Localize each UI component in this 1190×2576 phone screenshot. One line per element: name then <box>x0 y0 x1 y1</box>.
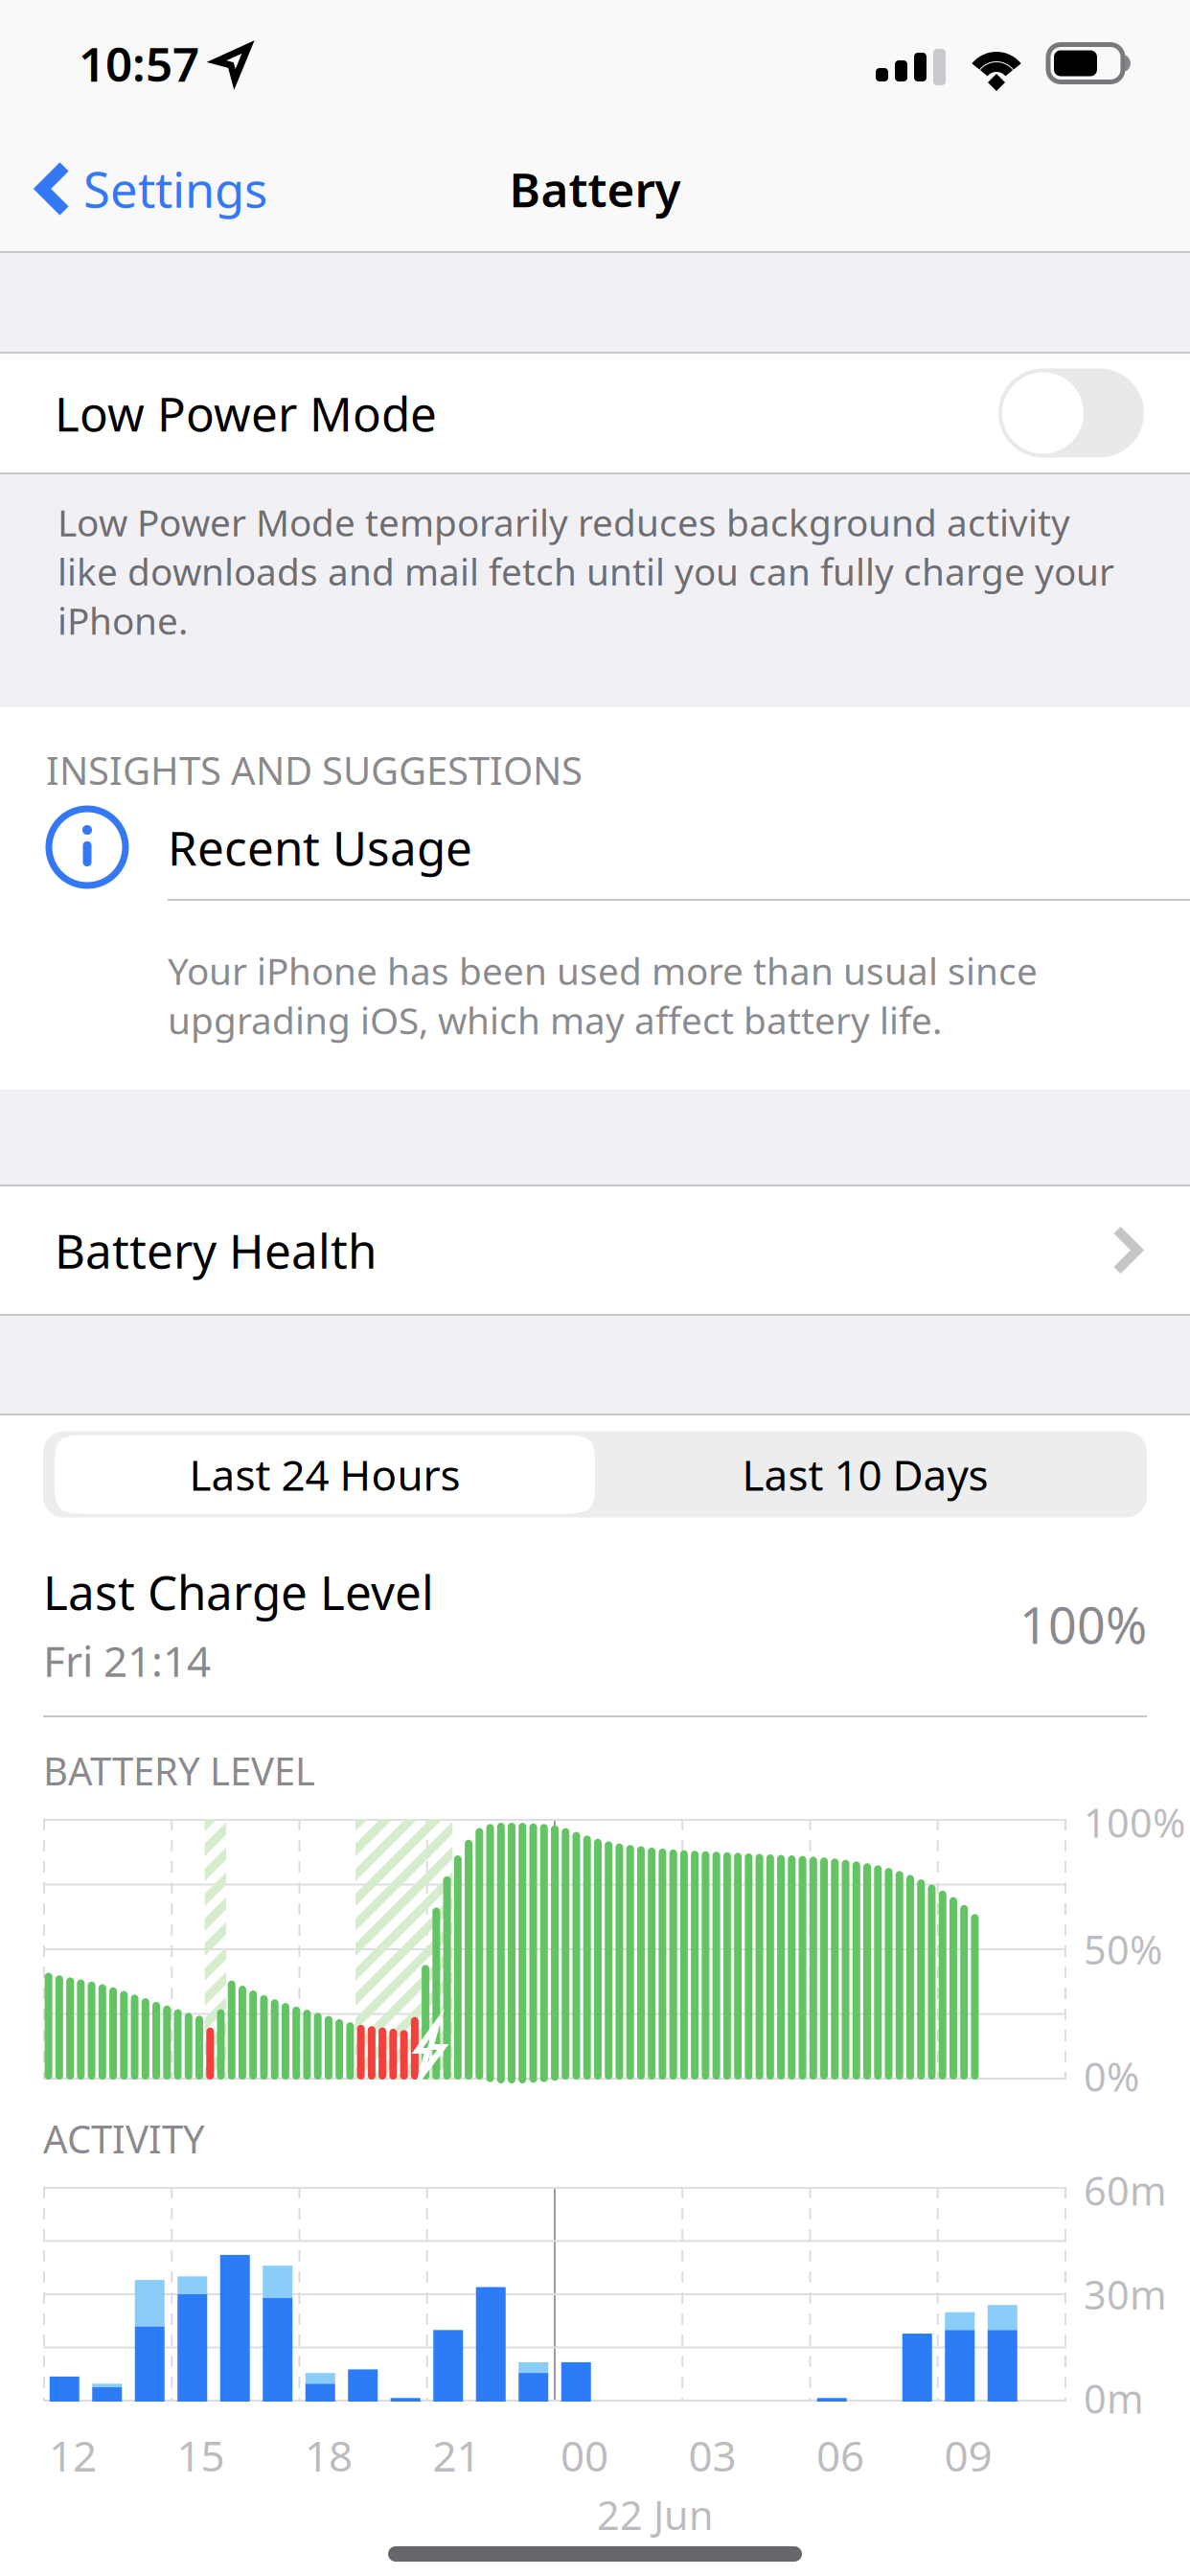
staticText: Fri 21:14 <box>43 1633 211 1688</box>
staticText: Your iPhone has been used more than usua… <box>168 946 1038 1044</box>
staticText: 60m <box>1084 2164 1167 2217</box>
staticText: 03 <box>688 2427 736 2483</box>
staticText: Battery Health <box>55 1219 377 1281</box>
staticText: 0% <box>1084 2050 1139 2103</box>
staticText: 06 <box>816 2427 864 2483</box>
staticText: 30m <box>1084 2268 1167 2321</box>
staticText: 100% <box>1019 1591 1147 1658</box>
staticText: 21 <box>433 2427 481 2483</box>
staticText: Low Power Mode temporarily reduces backg… <box>57 497 1114 645</box>
staticText: Low Power Mode <box>55 382 437 444</box>
staticText: Settings <box>83 157 267 221</box>
staticText: 0m <box>1084 2372 1144 2425</box>
staticText: 00 <box>561 2427 608 2483</box>
staticText: Last Charge Level <box>43 1560 434 1623</box>
staticText: 10:57 <box>79 32 199 95</box>
staticText: Last 24 Hours <box>189 1446 460 1502</box>
staticText: 15 <box>177 2427 225 2483</box>
staticText: Battery <box>509 157 681 220</box>
button[interactable]: Battery Health <box>0 1186 1190 1314</box>
staticText: 18 <box>305 2427 353 2483</box>
button[interactable]: Low Power Mode <box>0 354 1190 472</box>
staticText: Last 10 Days <box>742 1446 988 1502</box>
staticText: 09 <box>944 2427 992 2483</box>
staticText: 100% <box>1084 1796 1185 1849</box>
staticText: INSIGHTS AND SUGGESTIONS <box>46 745 583 795</box>
button[interactable]: Last 10 Days <box>595 1435 1135 1514</box>
staticText: BATTERY LEVEL <box>43 1745 315 1796</box>
staticText: 50% <box>1084 1923 1162 1976</box>
button[interactable]: Last 24 Hours <box>55 1435 595 1514</box>
staticText: 12 <box>49 2427 97 2483</box>
staticText: Recent Usage <box>168 816 472 879</box>
staticText: 22 Jun <box>597 2488 714 2541</box>
staticText: ACTIVITY <box>43 2113 205 2164</box>
button[interactable]: Settings <box>0 126 290 251</box>
